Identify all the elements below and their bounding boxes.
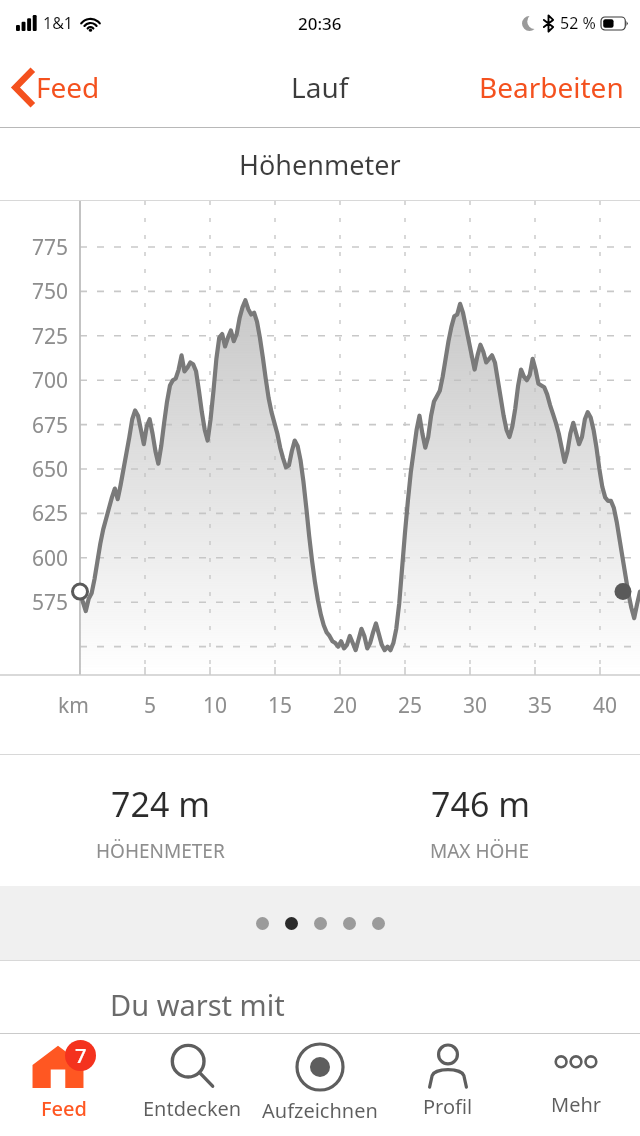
staticText: 600 xyxy=(31,544,68,573)
staticText: 35 xyxy=(528,691,553,720)
staticText: 746 m xyxy=(431,781,530,827)
staticText: Bearbeiten xyxy=(479,68,624,106)
staticText: 52 % xyxy=(560,12,596,34)
staticText: Mehr xyxy=(551,1091,602,1118)
staticText: jemandem xyxy=(110,1024,257,1063)
staticText: 10 xyxy=(203,691,228,720)
other: Profil xyxy=(425,1042,471,1088)
button[interactable]: Bearbeiten xyxy=(463,60,640,114)
staticText: Lauf xyxy=(291,68,349,106)
staticText: MAX HÖHE xyxy=(430,838,530,864)
staticText: Feed xyxy=(41,1095,87,1122)
staticText: 40 xyxy=(593,691,618,720)
staticText: Feed xyxy=(36,68,100,106)
staticText: 700 xyxy=(31,366,68,395)
staticText: 1&1 xyxy=(43,12,74,34)
staticText: 750 xyxy=(31,277,68,306)
staticText: Aufzeichnen xyxy=(262,1097,378,1124)
button[interactable] xyxy=(285,917,298,930)
button[interactable]: Aufzeichnen xyxy=(256,1034,384,1124)
staticText: Du warst mit xyxy=(110,985,285,1024)
staticText: 30 xyxy=(463,691,488,720)
staticText: 7 xyxy=(75,1042,87,1069)
button[interactable]: Entdecken xyxy=(128,1034,256,1122)
other: Aufzeichnen xyxy=(295,1042,345,1092)
staticText: Höhenmeter xyxy=(239,146,401,183)
staticText: km xyxy=(58,691,89,720)
button[interactable]: Mehr xyxy=(512,1034,640,1118)
staticText: 675 xyxy=(31,411,68,440)
other: Entdecken xyxy=(168,1042,216,1090)
staticText: 725 xyxy=(31,322,68,351)
staticText: 15 xyxy=(268,691,293,720)
staticText: 5 xyxy=(144,691,157,720)
other: Feed xyxy=(28,1042,100,1090)
staticText: 724 m xyxy=(111,781,210,827)
staticText: HÖHENMETER xyxy=(96,838,225,864)
button[interactable] xyxy=(343,917,356,930)
staticText: Entdecken xyxy=(143,1095,242,1122)
staticText: 25 xyxy=(398,691,423,720)
staticText: 20 xyxy=(333,691,358,720)
staticText: 625 xyxy=(31,499,68,528)
staticText: 775 xyxy=(31,233,68,262)
staticText: 20:36 xyxy=(298,12,342,35)
button[interactable]: Feed xyxy=(0,1034,128,1122)
button[interactable]: Profil xyxy=(384,1034,512,1120)
button[interactable] xyxy=(256,917,269,930)
staticText: 575 xyxy=(31,588,68,617)
staticText: Profil xyxy=(423,1093,473,1120)
button[interactable]: Feed xyxy=(0,60,112,114)
other: Mehr xyxy=(552,1042,600,1086)
staticText: 650 xyxy=(31,455,68,484)
button[interactable] xyxy=(372,917,385,930)
button[interactable] xyxy=(314,917,327,930)
